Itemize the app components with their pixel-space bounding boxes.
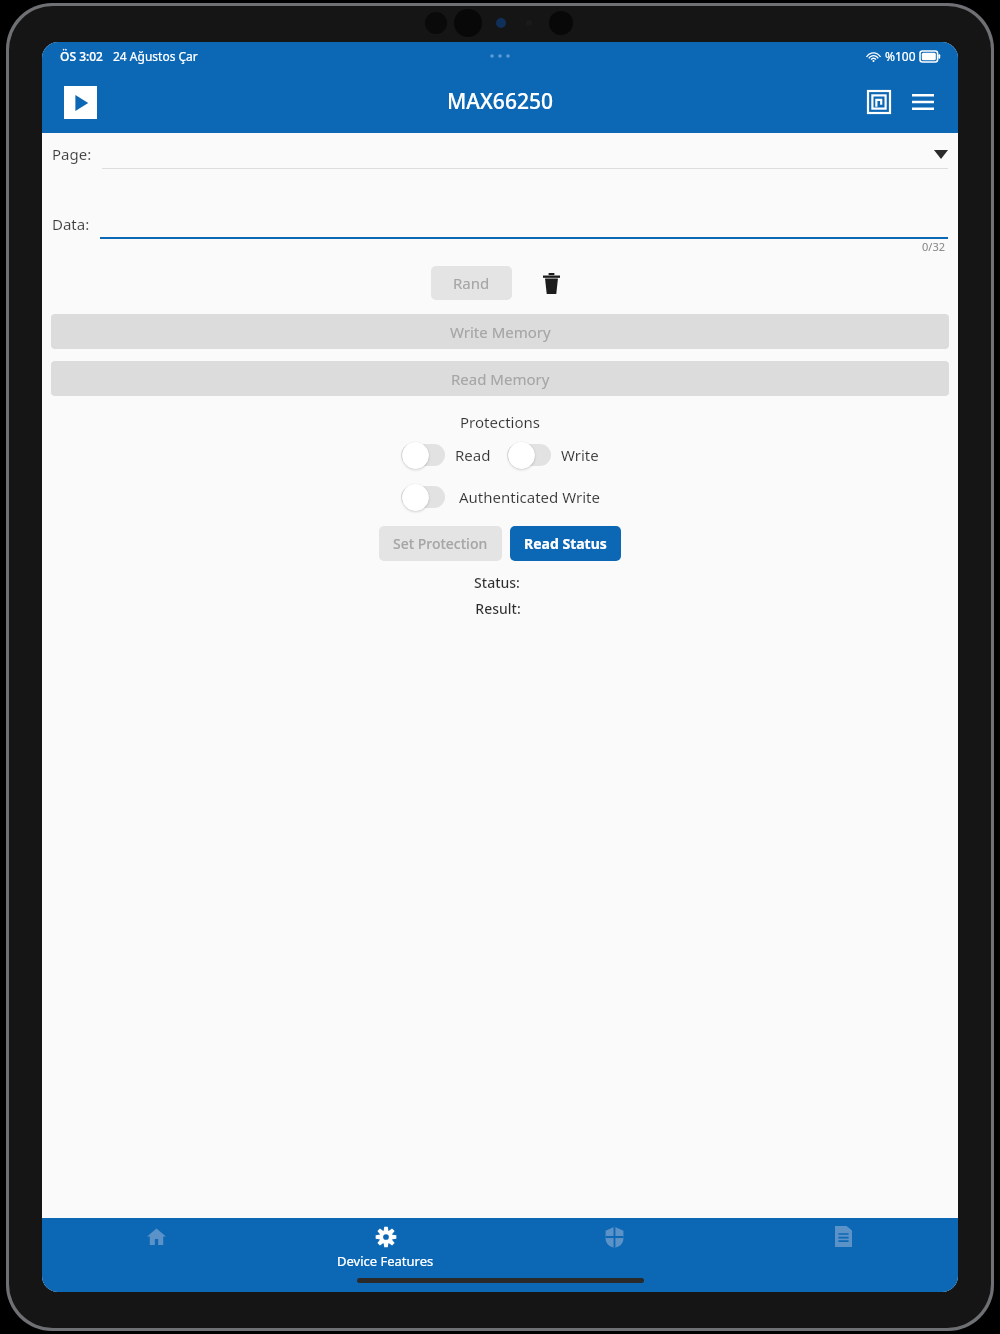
button[interactable]: NFC [858,81,900,123]
staticText: Read Memory [451,369,550,389]
button[interactable]: Set Protection [379,526,502,561]
staticText: Status: [42,573,952,592]
staticText: Data: [52,214,90,234]
staticText: Write Memory [450,322,551,342]
button[interactable]: Logo [58,80,102,124]
button[interactable]: Toggle [401,440,447,470]
staticText: %100 [885,48,916,64]
staticText: MAX66250 [447,87,553,116]
button[interactable]: Delete [532,264,570,302]
staticText: Protections [42,412,958,432]
staticText: Page: [52,144,92,164]
staticText: Rand [453,273,490,293]
staticText: 24 Ağustos Çar [113,48,198,64]
button[interactable]: Security [500,1222,729,1252]
staticText: Read [455,445,491,465]
button[interactable]: Device Features [271,1222,500,1274]
button[interactable]: Read Status [510,526,621,561]
button[interactable]: Read Memory [51,361,949,396]
button[interactable] [102,139,948,169]
button[interactable]: Rand [431,266,512,300]
button[interactable] [100,209,948,239]
staticText: Device Features [337,1252,434,1270]
staticText: Read Status [524,534,607,553]
button[interactable]: Toggle [401,482,447,512]
staticText: Result: [42,599,954,618]
staticText: ÖS 3:02 [60,48,103,64]
button[interactable]: Toggle [507,440,553,470]
staticText: Write [561,445,599,465]
button[interactable]: Menu [902,81,944,123]
staticText: Set Protection [393,534,488,553]
button[interactable]: Write Memory [51,314,949,349]
button[interactable]: Logs [729,1222,958,1251]
button[interactable]: Home [42,1222,271,1251]
staticText: Authenticated Write [459,487,600,507]
staticText: 0/32 [922,239,945,254]
